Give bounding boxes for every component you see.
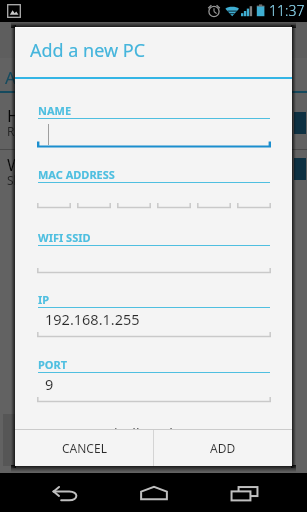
staticText: 9 xyxy=(45,374,54,394)
staticText: HomePC xyxy=(7,104,77,127)
staticText: 192.168.1.255 xyxy=(45,309,140,329)
staticText: CANCEL xyxy=(62,440,107,456)
staticText: Automatically wake up xyxy=(57,424,206,443)
staticText: IP xyxy=(38,292,50,307)
staticText: NAME xyxy=(38,103,72,118)
staticText: WIFI SSID xyxy=(38,230,91,245)
button[interactable]: Recent apps xyxy=(216,473,272,512)
staticText: A xyxy=(5,66,16,89)
staticText: PORT xyxy=(38,357,68,372)
staticText: Work xyxy=(7,153,49,176)
button[interactable]: Home xyxy=(126,473,182,512)
button[interactable]: Back xyxy=(37,473,93,512)
staticText: ADD xyxy=(210,440,236,456)
button[interactable]: CANCEL xyxy=(15,430,153,466)
button[interactable]: ADD xyxy=(154,430,292,466)
staticText: Sleeping xyxy=(7,172,56,188)
staticText: Ready to wake xyxy=(7,123,89,139)
staticText: MAC ADDRESS xyxy=(38,167,115,182)
staticText: Add a new PC xyxy=(30,38,146,63)
staticText: 11:37 xyxy=(269,1,305,20)
